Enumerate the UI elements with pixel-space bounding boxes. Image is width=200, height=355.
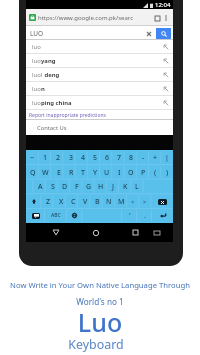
button[interactable]: P: [137, 165, 149, 180]
button[interactable]: L: [131, 179, 143, 194]
staticText: luo: [32, 85, 41, 93]
button[interactable]: O: [125, 165, 137, 180]
button[interactable]: C: [67, 194, 79, 209]
button[interactable]: T: [77, 165, 89, 180]
button[interactable]: luol: [26, 68, 173, 82]
button[interactable]: ): [161, 165, 173, 180]
button[interactable]: 3: [65, 150, 77, 165]
staticText: luo: [32, 99, 41, 107]
button[interactable]: A: [34, 179, 47, 194]
staticText: LUO: [30, 29, 44, 38]
button[interactable]: Y: [89, 165, 101, 180]
staticText: M: [118, 197, 125, 207]
button[interactable]: 2: [52, 150, 65, 165]
button[interactable]: U: [101, 165, 113, 180]
button[interactable]: Contact Us: [26, 120, 173, 135]
staticText: 12:04: [155, 1, 171, 9]
button[interactable]: |: [161, 150, 173, 165]
staticText: |: [165, 153, 169, 163]
button[interactable]: V: [79, 194, 91, 209]
button[interactable]: Z: [42, 194, 55, 209]
button[interactable]: luo: [26, 40, 173, 54]
button[interactable]: J: [107, 179, 119, 194]
button[interactable]: -: [137, 150, 149, 165]
staticText: luo: [32, 43, 41, 51]
staticText: H: [98, 182, 104, 192]
staticText: ping china: [41, 99, 72, 107]
button[interactable]: Home: [89, 226, 102, 239]
button[interactable]: K: [119, 179, 131, 194]
button[interactable]: Tabs: [153, 14, 161, 22]
staticText: P: [141, 168, 146, 178]
staticText: (: [154, 168, 157, 178]
button[interactable]: LUO: [28, 26, 144, 40]
staticText: 2: [56, 153, 61, 163]
button[interactable]: luo: [26, 96, 173, 110]
staticText: J: [112, 182, 115, 192]
button[interactable]: X: [55, 194, 67, 209]
staticText: Q: [30, 168, 36, 178]
button[interactable]: Shift: [26, 194, 42, 209]
button[interactable]: ABC: [45, 208, 67, 223]
staticText: Luo: [0, 305, 200, 339]
staticText: B: [95, 197, 100, 207]
button[interactable]: 8: [125, 150, 137, 165]
button[interactable]: ': [122, 208, 137, 223]
button[interactable]: G: [83, 179, 95, 194]
button[interactable]: N: [103, 194, 115, 209]
button[interactable]: R: [65, 165, 77, 180]
staticText: K: [123, 182, 128, 192]
button[interactable]: Emoji: [26, 208, 45, 223]
button[interactable]: 5: [89, 150, 101, 165]
button[interactable]: .: [137, 208, 152, 223]
staticText: C: [71, 197, 76, 207]
staticText: E: [57, 168, 61, 178]
button[interactable]: Recents: [129, 226, 142, 239]
button[interactable]: I: [113, 165, 125, 180]
button[interactable]: Change language: [67, 208, 82, 223]
button[interactable]: >: [139, 194, 151, 209]
button[interactable]: Space: [82, 208, 122, 223]
staticText: +: [153, 153, 158, 163]
button[interactable]: 1: [39, 150, 52, 165]
button[interactable]: luo: [26, 82, 173, 96]
button[interactable]: M: [115, 194, 127, 209]
button[interactable]: 7: [113, 150, 125, 165]
button[interactable]: Report inappropriate predictions: [26, 110, 173, 120]
button[interactable]: Q: [26, 165, 39, 180]
button[interactable]: Enter: [152, 208, 173, 223]
button[interactable]: ~: [26, 150, 39, 165]
button[interactable]: More options: [162, 14, 170, 22]
staticText: 1: [43, 153, 48, 163]
button[interactable]: 6: [101, 150, 113, 165]
staticText: luo: [32, 57, 41, 65]
button[interactable]: Keyboard layout: [150, 226, 163, 239]
button[interactable]: H: [95, 179, 107, 194]
staticText: https://www.google.com.pk/searc: [38, 14, 134, 22]
staticText: F: [75, 182, 79, 192]
staticText: Now Write in Your Own Native Language Th…: [0, 280, 200, 290]
staticText: deng: [43, 71, 60, 79]
staticText: Y: [93, 168, 98, 178]
button[interactable]: Backspace: [151, 194, 173, 209]
button[interactable]: E: [52, 165, 65, 180]
button[interactable]: W: [39, 165, 52, 180]
staticText: A: [38, 182, 43, 192]
button[interactable]: B: [91, 194, 103, 209]
staticText: ): [166, 168, 169, 178]
button[interactable]: +: [149, 150, 161, 165]
button[interactable]: F: [71, 179, 83, 194]
staticText: luol: [32, 71, 43, 79]
button[interactable]: S: [47, 179, 59, 194]
button[interactable]: <: [127, 194, 139, 209]
staticText: G: [86, 182, 92, 192]
button[interactable]: D: [59, 179, 71, 194]
button[interactable]: (: [149, 165, 161, 180]
button[interactable]: luo: [26, 54, 173, 68]
staticText: T: [81, 168, 85, 178]
staticText: 7: [117, 153, 122, 163]
button[interactable]: Search: [156, 28, 171, 39]
button[interactable]: Back: [49, 226, 62, 239]
button[interactable]: Clear: [144, 29, 153, 38]
button[interactable]: 4: [77, 150, 89, 165]
